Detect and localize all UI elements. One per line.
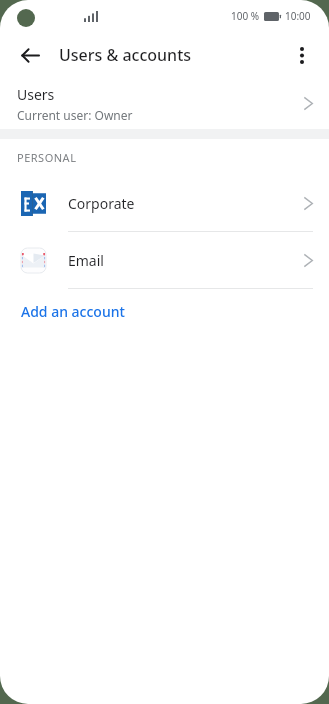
staticText: Add an account <box>21 302 125 321</box>
button[interactable]: Back <box>12 37 48 73</box>
button[interactable]: Email account <box>0 232 329 288</box>
button[interactable]: Add an account <box>0 289 329 333</box>
staticText: Current user: Owner <box>17 107 133 123</box>
staticText: PERSONAL <box>17 150 77 165</box>
button[interactable]: More options <box>283 36 321 74</box>
staticText: 10:00 <box>285 9 311 23</box>
other: Corporate Exchange account <box>21 191 46 216</box>
button[interactable]: Users <box>0 78 329 129</box>
staticText: Corporate <box>68 194 135 213</box>
other: Email account <box>21 248 46 273</box>
staticText: Users & accounts <box>59 44 192 66</box>
staticText: Users <box>17 85 55 104</box>
staticText: 100 % <box>231 9 260 23</box>
staticText: Email <box>68 251 104 270</box>
button[interactable]: Corporate Exchange account <box>0 175 329 231</box>
